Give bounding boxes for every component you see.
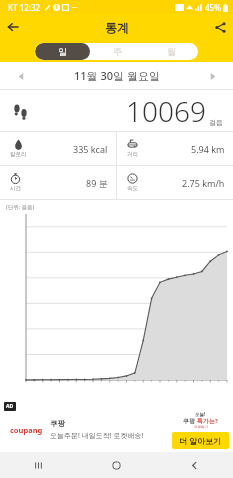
staticText: KT 12:32 xyxy=(8,2,41,13)
button[interactable]: 일 xyxy=(35,43,90,60)
button[interactable]: 속도 xyxy=(117,166,233,199)
staticText: 335 kcal xyxy=(73,143,108,155)
button[interactable]: Recents xyxy=(0,452,77,478)
button[interactable]: Back xyxy=(0,14,26,40)
staticText: 주 xyxy=(113,46,122,57)
staticText: 2.75 km/h xyxy=(182,177,225,189)
staticText: 오늘! xyxy=(195,411,206,417)
button[interactable]: 칼로리 xyxy=(0,132,116,165)
staticText: 속도 xyxy=(127,185,138,192)
button[interactable]: 10069 xyxy=(0,90,233,131)
staticText: 10069 xyxy=(126,92,206,130)
staticText: 5.94 km xyxy=(191,143,225,155)
button[interactable]: Next day xyxy=(203,67,221,85)
staticText: 걸음 xyxy=(209,118,223,127)
staticText: (단위: 걸음) xyxy=(6,203,35,211)
staticText: 1 xyxy=(55,4,58,11)
staticText: 11월 30일 월요일 xyxy=(74,68,160,83)
staticText: 월 xyxy=(167,46,176,57)
button[interactable]: Share xyxy=(207,14,233,40)
staticText: 89 분 xyxy=(86,177,108,189)
button[interactable]: 더 알아보기 xyxy=(172,432,229,449)
staticText: 쿠팡특가 xyxy=(194,425,208,429)
staticText: 일 xyxy=(58,46,67,57)
button[interactable]: Previous day xyxy=(12,67,30,85)
button[interactable]: 거리 xyxy=(117,132,233,165)
staticText: 쿠팡 xyxy=(50,419,65,428)
button[interactable]: 시간 xyxy=(0,166,116,199)
staticText: 오늘주문! 내일도착! 로켓배송! xyxy=(50,431,144,441)
staticText: 45% xyxy=(205,2,221,13)
staticText: 통계 xyxy=(105,20,129,35)
button[interactable]: Home xyxy=(77,452,155,478)
button[interactable]: Back xyxy=(155,452,233,478)
staticText: AD xyxy=(6,403,14,410)
button[interactable]: 주 xyxy=(90,43,144,60)
staticText: 쿠팡 xyxy=(183,417,197,425)
button[interactable]: AD xyxy=(0,400,233,452)
staticText: 더 알아보기 xyxy=(179,435,222,446)
staticText: 특가는? xyxy=(197,417,218,425)
staticText: coupang xyxy=(10,425,43,435)
staticText: 시간 xyxy=(10,185,21,192)
staticText: 칼로리 xyxy=(10,151,27,158)
staticText: 거리 xyxy=(127,151,138,158)
button[interactable]: 월 xyxy=(144,43,198,60)
staticText: ··· xyxy=(72,3,78,13)
